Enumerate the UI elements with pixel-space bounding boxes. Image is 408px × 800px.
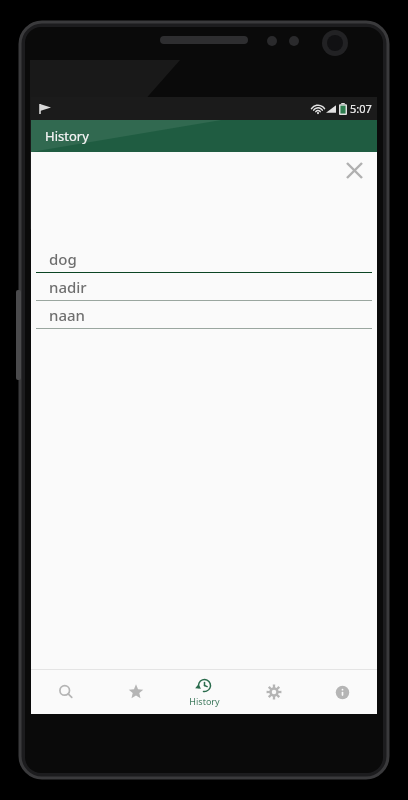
staticText: dog <box>49 249 77 269</box>
staticText: History <box>45 127 89 145</box>
button[interactable]: Search <box>31 670 101 714</box>
button[interactable]: Favorites <box>101 670 170 714</box>
button[interactable]: dog <box>31 245 377 273</box>
staticText: naan <box>49 305 85 325</box>
button[interactable]: nadir <box>31 273 377 301</box>
staticText: History <box>189 695 220 707</box>
button[interactable]: Settings <box>239 670 308 714</box>
staticText: nadir <box>49 277 87 297</box>
staticText: 5:07 <box>350 101 372 116</box>
button[interactable]: History <box>170 670 239 714</box>
button[interactable]: Info <box>308 670 377 714</box>
button[interactable]: naan <box>31 301 377 329</box>
button[interactable]: Clear history <box>341 157 367 183</box>
